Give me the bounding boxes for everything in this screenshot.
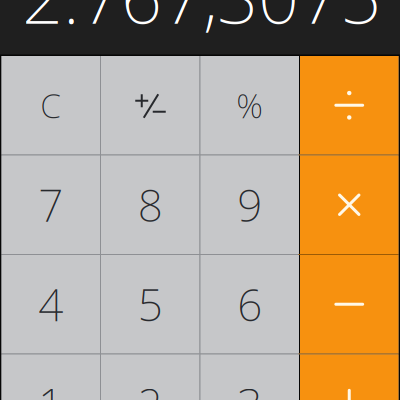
staticText: 3	[237, 374, 262, 400]
button[interactable]: 8	[101, 155, 199, 254]
button[interactable]: 3	[200, 354, 299, 400]
button[interactable]: 1	[1, 354, 100, 400]
button[interactable]: 9	[200, 155, 299, 254]
staticText: 5	[138, 275, 163, 333]
button[interactable]: Subtract	[300, 255, 398, 353]
button[interactable]: Divide	[300, 56, 398, 154]
button[interactable]: Multiply	[300, 155, 398, 254]
staticText: C	[40, 83, 61, 127]
staticText: 1	[38, 374, 63, 400]
button[interactable]: 2	[101, 354, 199, 400]
button[interactable]: 6	[200, 255, 299, 353]
staticText: 6	[237, 275, 262, 333]
button[interactable]: C	[1, 56, 100, 154]
staticText: 2.767,3075	[22, 0, 381, 44]
button[interactable]: 4	[1, 255, 100, 353]
staticText: 4	[38, 275, 63, 333]
button[interactable]: Add	[300, 354, 398, 400]
staticText: 9	[237, 175, 262, 234]
button[interactable]: %	[200, 56, 299, 154]
button[interactable]: 7	[1, 155, 100, 254]
staticText: 8	[138, 175, 163, 234]
staticText: 2	[138, 374, 163, 400]
staticText: %	[236, 83, 263, 127]
button[interactable]: Plus Minus	[101, 56, 199, 154]
staticText: 7	[38, 175, 63, 234]
button[interactable]: 5	[101, 255, 199, 353]
